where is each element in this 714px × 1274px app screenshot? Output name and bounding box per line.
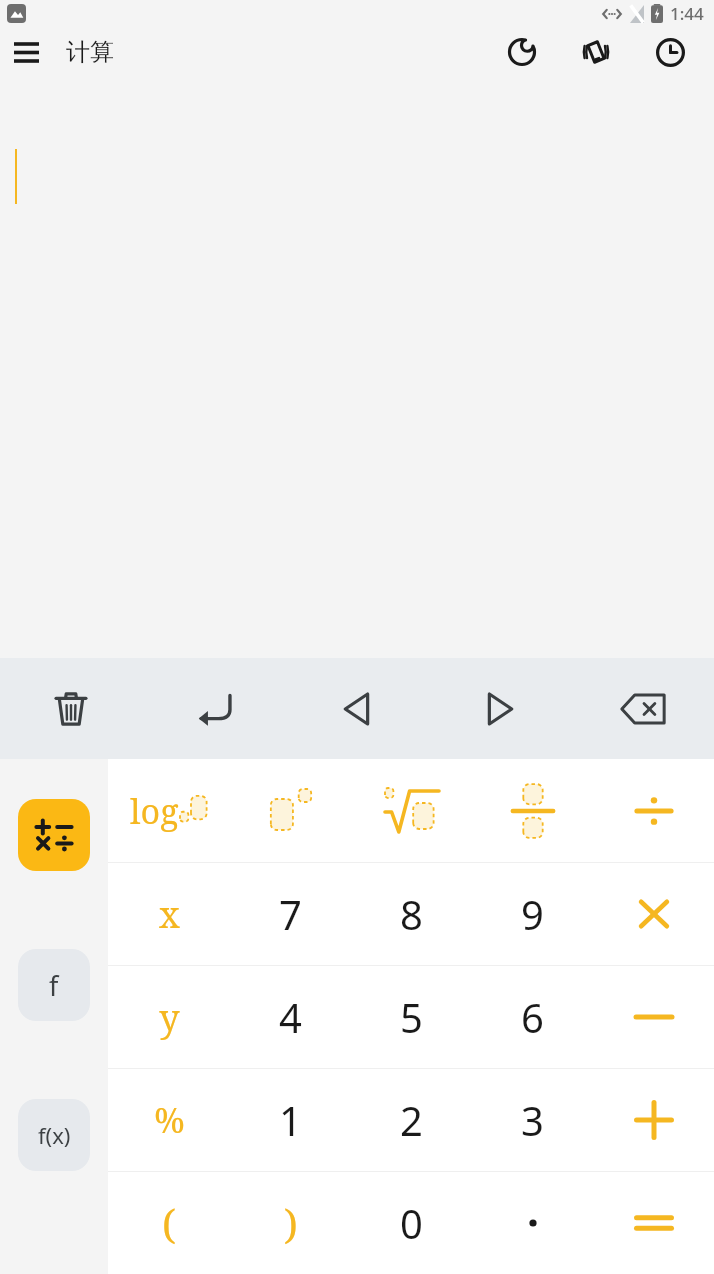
button[interactable]: Basic operations — [18, 799, 90, 871]
button[interactable]: 7 — [230, 863, 351, 965]
button[interactable] — [351, 759, 472, 862]
button[interactable]: 0 — [351, 1172, 472, 1274]
button[interactable]: Clear — [0, 658, 142, 759]
button[interactable]: y — [108, 966, 230, 1068]
button[interactable] — [593, 1172, 714, 1274]
staticText: 7 — [279, 887, 302, 941]
staticText: y — [159, 993, 180, 1042]
staticText: 6 — [521, 990, 544, 1044]
staticText: 4 — [279, 990, 302, 1044]
button[interactable] — [593, 966, 714, 1068]
button[interactable]: 5 — [351, 966, 472, 1068]
staticText: 8 — [400, 887, 423, 941]
button[interactable] — [472, 1172, 593, 1274]
button[interactable] — [593, 863, 714, 965]
staticText: 0 — [400, 1196, 423, 1250]
button[interactable]: History — [644, 27, 696, 77]
staticText: 3 — [521, 1093, 544, 1147]
staticText: 2 — [400, 1093, 423, 1147]
button[interactable]: 8 — [351, 863, 472, 965]
button[interactable]: 4 — [230, 966, 351, 1068]
button[interactable]: Functions — [18, 1099, 90, 1171]
button[interactable]: x — [108, 863, 230, 965]
button[interactable]: Functions — [18, 949, 90, 1021]
button[interactable]: 2 — [351, 1069, 472, 1171]
staticText: x — [159, 890, 180, 939]
staticText: 5 — [400, 990, 423, 1044]
button[interactable]: ) — [230, 1172, 351, 1274]
button[interactable]: 9 — [472, 863, 593, 965]
staticText: 9 — [521, 887, 544, 941]
button[interactable]: Shake — [570, 27, 622, 77]
staticText: 计算 — [66, 37, 114, 67]
staticText: f — [49, 967, 59, 1004]
button[interactable]: Theme — [496, 27, 548, 77]
button[interactable]: log — [108, 759, 230, 862]
button[interactable] — [230, 759, 351, 862]
button[interactable] — [472, 759, 593, 862]
button[interactable]: 3 — [472, 1069, 593, 1171]
staticText: ) — [284, 1196, 298, 1250]
staticText: f(x) — [38, 1120, 71, 1150]
button[interactable]: Backspace — [571, 658, 714, 759]
button[interactable]: 6 — [472, 966, 593, 1068]
staticText: ( — [162, 1196, 176, 1250]
button[interactable]: 1 — [230, 1069, 351, 1171]
staticText: % — [154, 1097, 185, 1143]
button[interactable] — [593, 759, 714, 862]
staticText: 1 — [279, 1093, 302, 1147]
staticText: 1:44 — [670, 2, 704, 25]
button[interactable]: Left — [285, 658, 428, 759]
button[interactable]: % — [108, 1069, 230, 1171]
staticText: log — [130, 788, 179, 834]
button[interactable]: Enter — [142, 658, 285, 759]
button[interactable]: ( — [108, 1172, 230, 1274]
button[interactable]: Right — [428, 658, 571, 759]
button[interactable]: Menu — [0, 27, 52, 77]
button[interactable] — [593, 1069, 714, 1171]
